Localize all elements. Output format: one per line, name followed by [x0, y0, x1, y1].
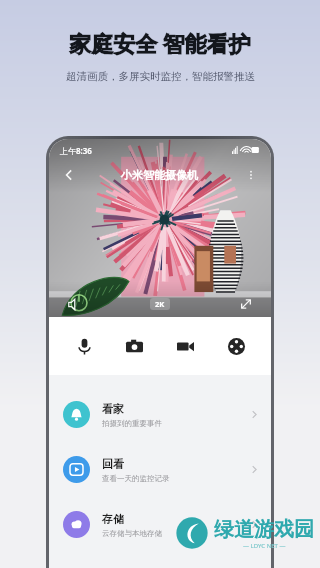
button[interactable]: 2K [150, 298, 170, 310]
button[interactable]: 存储 [49, 497, 271, 552]
staticText: — LDYC NET — [243, 542, 286, 550]
button[interactable]: Take photo [117, 329, 151, 363]
staticText: 看家 [102, 402, 124, 416]
button[interactable]: 看家 [49, 387, 271, 442]
staticText: 云存储与本地存储 [102, 529, 162, 538]
button[interactable]: 回看 [49, 442, 271, 497]
staticText: 存储 [102, 512, 124, 526]
button[interactable]: Mute [63, 293, 85, 315]
staticText: 上午8:36 [60, 145, 92, 156]
button[interactable]: Back [57, 163, 81, 187]
staticText: 查看一天的监控记录 [102, 474, 170, 483]
staticText: 2K [155, 299, 165, 309]
staticText: 超清画质，多屏实时监控，智能报警推送 [66, 70, 255, 83]
staticText: 小米智能摄像机 [121, 168, 198, 182]
button[interactable]: More options [239, 163, 263, 187]
staticText: 绿道游戏园 [214, 517, 314, 542]
button[interactable]: Record video [168, 329, 202, 363]
staticText: 回看 [102, 457, 124, 471]
button[interactable]: Pan and tilt [219, 329, 253, 363]
staticText: 拍摄到的重要事件 [102, 419, 162, 428]
button[interactable]: Fullscreen [235, 293, 257, 315]
button[interactable]: Microphone [67, 329, 101, 363]
staticText: 家庭安全 智能看护 [69, 28, 251, 58]
